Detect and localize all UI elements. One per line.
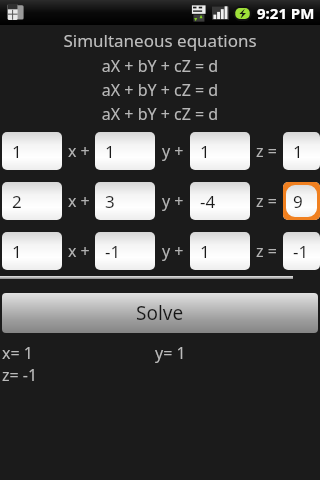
staticText: -4 [200,190,216,213]
staticText: y + [162,190,184,212]
staticText: y= 1 [155,342,186,364]
button[interactable]: -1 [95,232,155,270]
button[interactable]: 1 [190,232,250,270]
staticText: 9 [293,190,303,213]
staticText: aX + bY + cZ = d [0,103,320,125]
button[interactable]: 3 [95,182,155,220]
staticText: 1 [12,140,22,163]
button[interactable]: -4 [190,182,250,220]
button[interactable]: 9 [283,182,320,220]
button[interactable]: 1 [190,132,250,170]
button[interactable]: Solve [2,293,318,333]
staticText: 1 [200,140,210,163]
staticText: x + [68,140,90,162]
button[interactable]: -1 [283,232,320,270]
staticText: x + [68,240,90,262]
staticText: y + [162,240,184,262]
staticText: z = [256,240,277,262]
staticText: 1 [105,140,115,163]
staticText: 1 [200,240,210,263]
button[interactable]: 1 [95,132,155,170]
staticText: aX + bY + cZ = d [0,55,320,77]
staticText: 9:21 PM [257,3,315,23]
button[interactable]: 1 [2,232,62,270]
staticText: z = [256,140,277,162]
staticText: Solve [136,300,184,326]
staticText: x + [68,190,90,212]
staticText: aX + bY + cZ = d [0,79,320,101]
staticText: 1 [293,140,303,163]
staticText: 2 [12,190,22,213]
staticText: Simultaneous equations [0,29,320,52]
button[interactable]: 1 [283,132,320,170]
staticText: 3 [105,190,115,213]
staticText: x= 1 [2,342,33,364]
staticText: -1 [105,240,121,263]
staticText: -1 [293,240,309,263]
staticText: 1 [12,240,22,263]
button[interactable]: 1 [2,132,62,170]
staticText: y + [162,140,184,162]
staticText: z= -1 [2,364,38,386]
button[interactable]: 2 [2,182,62,220]
staticText: z = [256,190,277,212]
